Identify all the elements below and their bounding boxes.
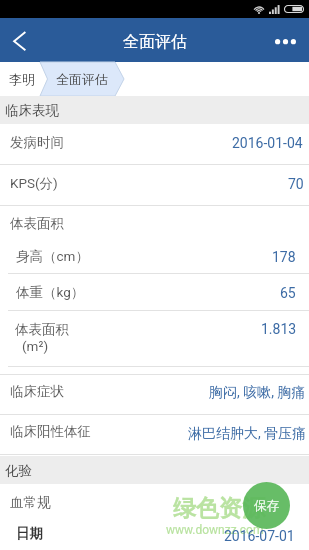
button[interactable]: Back — [0, 18, 40, 62]
button[interactable] — [0, 311, 309, 366]
button[interactable] — [0, 241, 309, 273]
staticText: 体表面积 — [15, 321, 69, 338]
button[interactable]: 李明 — [9, 71, 35, 87]
button[interactable] — [0, 274, 309, 310]
staticText: 淋巴结肿大, 骨压痛 — [188, 425, 307, 443]
staticText: www.downzz.com — [166, 523, 264, 537]
staticText: 绿色资源 — [173, 494, 265, 523]
button[interactable]: More options — [269, 18, 309, 62]
staticText: 血常规 — [10, 494, 51, 511]
staticText: 发病时间 — [10, 134, 64, 151]
staticText: 保存 — [254, 498, 279, 514]
staticText: 身高（cm） — [16, 248, 89, 265]
staticText: 178 — [272, 249, 296, 265]
staticText: 70 — [288, 176, 304, 192]
staticText: KPS(分) — [10, 175, 58, 192]
staticText: 1.813 — [261, 321, 297, 337]
button[interactable] — [0, 415, 309, 454]
staticText: (m²) — [22, 338, 49, 354]
staticText: 临床阳性体征 — [10, 423, 91, 440]
staticText: 2016-01-04 — [232, 135, 303, 151]
staticText: 体重（kg） — [16, 284, 85, 301]
staticText: 65 — [280, 285, 296, 301]
staticText: 临床症状 — [10, 383, 64, 400]
staticText: 全面评估 — [123, 32, 187, 52]
staticText: 2016-07-01 — [224, 528, 295, 544]
staticText: 日期 — [16, 525, 43, 542]
button[interactable] — [0, 206, 309, 241]
staticText: 临床表现 — [5, 102, 59, 119]
button[interactable] — [0, 165, 309, 205]
staticText: 体表面积 — [10, 215, 64, 232]
button[interactable] — [0, 485, 309, 520]
button[interactable] — [0, 124, 309, 164]
button[interactable]: 全面评估 — [56, 71, 108, 87]
button[interactable] — [0, 520, 309, 550]
staticText: 化验 — [5, 462, 32, 479]
staticText: 胸闷, 咳嗽, 胸痛 — [209, 384, 306, 402]
button[interactable]: 保存 — [243, 482, 290, 529]
button[interactable] — [0, 375, 309, 414]
